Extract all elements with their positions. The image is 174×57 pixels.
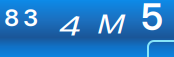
staticText: 8 [4,3,19,32]
staticText: 5 [141,0,163,39]
staticText: 4 [63,11,79,42]
staticText: M [102,9,125,40]
staticText: 3 [23,3,38,32]
